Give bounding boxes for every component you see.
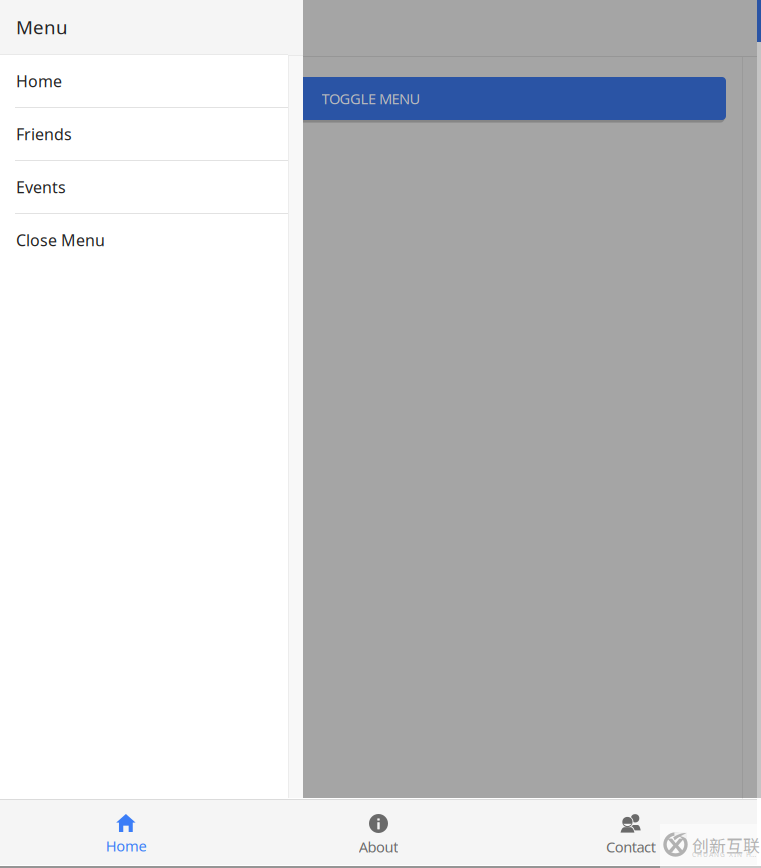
button[interactable]: Menu	[0, 0, 288, 54]
staticText: Home	[16, 70, 62, 92]
staticText: 创新互联	[692, 833, 760, 857]
staticText: Events	[16, 176, 66, 198]
staticText: Home	[106, 836, 147, 855]
staticText: Close Menu	[16, 229, 105, 251]
button[interactable]: TOGGLE MENU	[16, 77, 726, 120]
button[interactable]: Close Menu	[0, 214, 288, 266]
button[interactable]: Home	[0, 55, 288, 108]
button[interactable]: Home	[0, 800, 252, 865]
staticText: CHUANG XIN HU LIAN	[692, 850, 759, 859]
staticText: About	[359, 837, 398, 856]
button[interactable]: Friends	[0, 108, 288, 161]
button[interactable]: Events	[0, 161, 288, 214]
staticText: TOGGLE MENU	[321, 89, 420, 108]
staticText: Contact	[606, 837, 656, 856]
button[interactable]: Contact	[505, 800, 757, 865]
staticText: Menu	[16, 15, 68, 39]
button[interactable]: About	[252, 800, 505, 865]
staticText: Friends	[16, 123, 72, 145]
